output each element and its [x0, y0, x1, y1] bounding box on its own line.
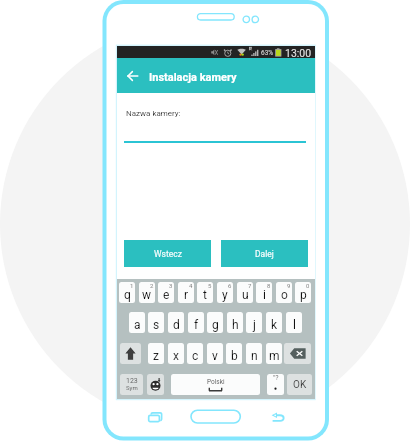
staticText: 9	[287, 282, 291, 289]
button[interactable]: Back	[121, 58, 144, 93]
staticText: t	[203, 288, 207, 302]
button[interactable]: v	[207, 343, 223, 364]
staticText: Nazwa kamery:	[126, 109, 181, 118]
button[interactable]: 5	[197, 282, 213, 303]
staticText: a	[134, 318, 141, 332]
staticText: 6	[228, 282, 232, 289]
staticText: Instalacja kamery	[149, 71, 237, 84]
staticText: 63%	[261, 49, 274, 57]
staticText: 0	[306, 282, 310, 289]
staticText: l	[293, 318, 296, 332]
button[interactable]: Space	[171, 374, 260, 395]
staticText: 3	[169, 282, 173, 289]
button[interactable]: n	[246, 343, 262, 364]
staticText: w	[142, 288, 152, 302]
button[interactable]: g	[207, 312, 223, 333]
staticText: g	[212, 318, 219, 332]
button[interactable]: 2	[139, 282, 155, 303]
staticText: Dalej	[255, 249, 274, 259]
staticText: OK	[293, 379, 307, 391]
staticText: v	[212, 349, 218, 363]
button[interactable]: j	[246, 312, 262, 333]
staticText: f	[194, 318, 199, 332]
button[interactable]: 0	[295, 282, 311, 303]
staticText: 13:00	[285, 47, 312, 59]
button[interactable]: 3	[158, 282, 174, 303]
button[interactable]: 1	[119, 282, 135, 303]
button[interactable]: Emoji	[147, 374, 164, 395]
staticText: 7	[248, 282, 252, 289]
button[interactable]: m	[266, 343, 282, 364]
staticText: m	[269, 349, 280, 363]
staticText: h	[232, 318, 239, 332]
button[interactable]: h	[227, 312, 243, 333]
staticText: k	[271, 318, 278, 332]
staticText: n	[251, 349, 258, 363]
button[interactable]: c	[187, 343, 203, 364]
button[interactable]: l	[286, 312, 302, 333]
staticText: 4	[189, 282, 193, 289]
staticText: Sym	[126, 384, 138, 391]
staticText: d	[173, 318, 180, 332]
button[interactable]: x	[168, 343, 184, 364]
button[interactable]: Wstecz	[124, 240, 211, 267]
staticText: c	[192, 349, 199, 363]
staticText: b	[231, 349, 238, 363]
staticText: o	[281, 288, 288, 302]
button[interactable]: OK	[287, 374, 312, 395]
staticText: i	[263, 288, 266, 302]
button[interactable]: k	[266, 312, 282, 333]
staticText: x	[173, 349, 179, 363]
staticText: r	[184, 288, 189, 302]
button[interactable]: Dalej	[221, 240, 308, 267]
button[interactable]: 8	[256, 282, 272, 303]
staticText: u	[242, 288, 249, 302]
staticText: e	[163, 288, 170, 302]
staticText: s	[153, 318, 160, 332]
button[interactable]: s	[148, 312, 164, 333]
staticText: p	[300, 288, 307, 302]
button[interactable]: 6	[217, 282, 233, 303]
staticText: Polski	[207, 378, 225, 386]
staticText: 8	[267, 282, 271, 289]
staticText: "?	[273, 374, 279, 382]
staticText: 5	[208, 282, 212, 289]
staticText: j	[253, 318, 256, 332]
button[interactable]: b	[226, 343, 242, 364]
button[interactable]: 9	[276, 282, 292, 303]
button[interactable]: z	[148, 343, 164, 364]
button[interactable]: Symbols	[120, 374, 143, 395]
staticText: 1	[130, 282, 134, 289]
button[interactable]: a	[129, 312, 145, 333]
staticText: Wstecz	[154, 249, 182, 259]
staticText: 123	[126, 377, 138, 385]
button[interactable]: Backspace	[284, 343, 311, 364]
staticText: q	[124, 288, 131, 302]
button[interactable]: Shift	[120, 343, 141, 364]
staticText: y	[222, 288, 228, 302]
staticText: z	[153, 349, 159, 363]
staticText: 2	[150, 282, 154, 289]
button[interactable]: Period	[267, 374, 284, 395]
button[interactable]: d	[168, 312, 184, 333]
button[interactable]: 4	[178, 282, 194, 303]
button[interactable]: f	[188, 312, 204, 333]
button[interactable]: 7	[237, 282, 253, 303]
